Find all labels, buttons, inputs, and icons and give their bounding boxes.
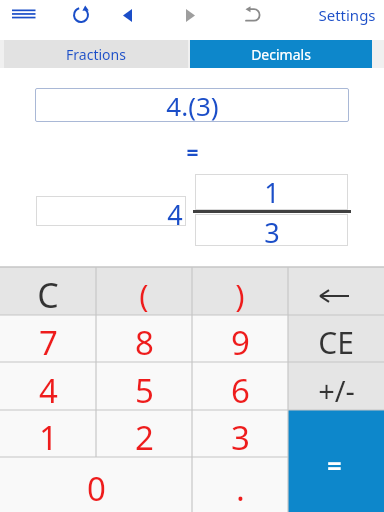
button[interactable]: CE [288,315,384,362]
button[interactable]: 3 [192,410,288,457]
button[interactable] [66,1,96,31]
staticText: Fractions [66,45,126,64]
button[interactable] [238,1,268,31]
button[interactable]: Fractions [4,40,188,68]
button[interactable]: 9 [192,315,288,362]
staticText: 9 [231,320,250,365]
staticText: 5 [135,368,154,413]
button[interactable]: +/- [288,362,384,410]
button[interactable] [175,1,205,31]
staticText: 1 [264,174,280,210]
staticText: Decimals [251,45,311,64]
button[interactable]: 8 [96,315,192,362]
staticText: = [327,448,342,482]
button[interactable]: 6 [192,362,288,410]
staticText: 3 [231,415,250,460]
staticText: 2 [135,415,154,460]
button[interactable]: . [192,457,288,512]
staticText: 4 [39,368,58,413]
button[interactable]: ) [192,267,288,315]
button[interactable]: 7 [0,315,96,362]
button[interactable] [288,267,384,315]
staticText: ( [139,274,149,316]
button[interactable]: 5 [96,362,192,410]
staticText: 8 [135,320,154,365]
staticText: CE [318,322,354,363]
button[interactable] [112,1,142,31]
staticText: . [236,466,245,511]
button[interactable]: 4 [0,362,96,410]
staticText: 1 [39,415,58,460]
staticText: 0 [87,466,106,511]
button[interactable]: 2 [96,410,192,457]
staticText: 6 [231,368,250,413]
button[interactable] [8,2,40,30]
button[interactable]: ( [96,267,192,315]
staticText: C [37,272,59,318]
button[interactable]: C [0,267,96,315]
staticText: 3 [264,214,280,246]
staticText: = [186,138,199,162]
button[interactable]: = [288,410,384,512]
button[interactable]: 1 [0,410,96,457]
button[interactable]: Settings [306,4,376,26]
staticText: Settings [318,5,376,25]
staticText: 7 [39,320,58,365]
button[interactable]: Decimals [190,40,372,68]
staticText: +/- [318,371,355,410]
staticText: 4 [167,196,183,226]
staticText: 4.(3) [166,88,219,122]
button[interactable]: 0 [0,457,192,512]
staticText: ) [235,274,245,316]
